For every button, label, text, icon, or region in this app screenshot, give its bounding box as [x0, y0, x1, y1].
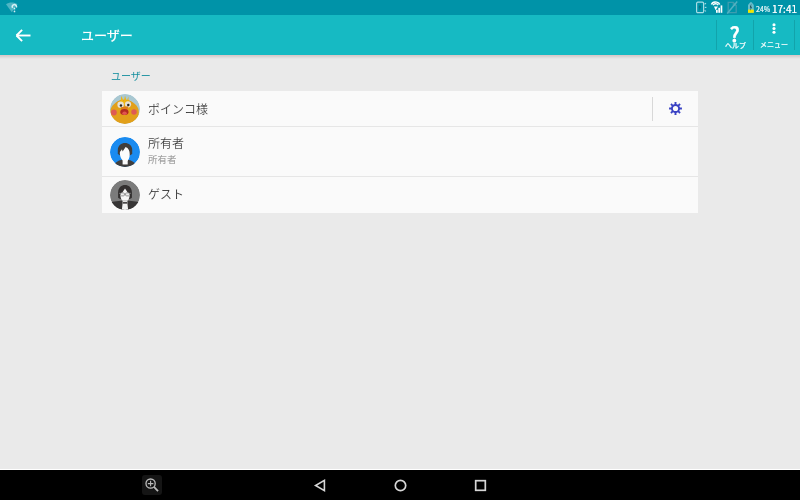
staticText: ?: [730, 19, 740, 48]
button[interactable]: Magnify: [142, 475, 162, 495]
staticText: 24%: [756, 4, 771, 14]
button[interactable]: ?: [717, 15, 753, 55]
button[interactable]: Back: [306, 471, 334, 499]
staticText: メニュー: [760, 39, 788, 49]
staticText: ユーザー: [81, 25, 133, 44]
button[interactable]: Recents: [466, 471, 494, 499]
button[interactable]: Menu: [754, 15, 794, 55]
staticText: 17:41: [772, 1, 797, 15]
button[interactable]: Home: [386, 471, 414, 499]
button[interactable]: Settings: [653, 91, 698, 126]
button[interactable]: ゲスト: [102, 177, 698, 213]
staticText: ユーザー: [111, 68, 151, 82]
staticText: 所有者: [148, 134, 185, 151]
button[interactable]: Back: [8, 20, 38, 50]
button[interactable]: 所有者: [102, 127, 698, 176]
staticText: ゲスト: [148, 185, 185, 202]
staticText: ポインコ様: [148, 100, 209, 117]
button[interactable]: ポインコ様: [102, 91, 698, 126]
staticText: ヘルプ: [725, 40, 746, 50]
staticText: 所有者: [148, 152, 177, 166]
